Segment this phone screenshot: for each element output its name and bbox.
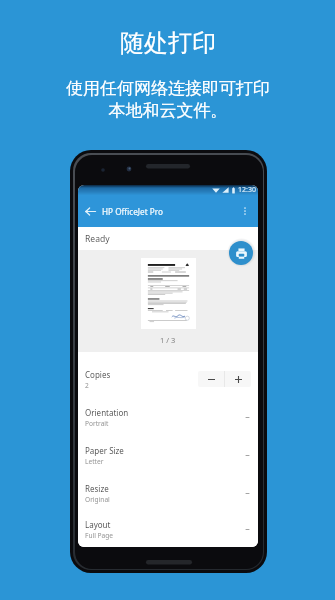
button[interactable]: Orientation: [78, 398, 258, 436]
staticText: Orientation: [85, 407, 129, 418]
staticText: Copies: [85, 369, 111, 380]
button[interactable]: More options: [238, 204, 252, 218]
button[interactable]: Layout: [78, 512, 258, 547]
staticText: 1 / 3: [160, 335, 176, 345]
staticText: Letter: [85, 457, 104, 466]
staticText: Layout: [85, 519, 111, 530]
staticText: HP OfficeJet Pro: [102, 206, 163, 217]
staticText: Paper Size: [85, 445, 124, 456]
staticText: 2: [85, 381, 89, 390]
staticText: Full Page: [85, 531, 114, 540]
staticText: Ready: [85, 233, 110, 245]
staticText: Portrait: [85, 419, 109, 428]
staticText: Original: [85, 495, 110, 504]
staticText: 随处打印: [120, 28, 216, 58]
button[interactable]: Decrease copies: [198, 371, 224, 387]
button[interactable]: Resize: [78, 474, 258, 512]
button[interactable]: Copies: [78, 360, 258, 398]
button[interactable]: Paper Size: [78, 436, 258, 474]
staticText: 使用任何网络连接即可打印 本地和云文件。: [66, 78, 270, 121]
button[interactable]: Print: [229, 241, 253, 265]
staticText: 12:30: [238, 185, 256, 195]
button[interactable]: Back: [83, 204, 98, 219]
staticText: Resize: [85, 483, 109, 494]
button[interactable]: Increase copies: [225, 371, 251, 387]
